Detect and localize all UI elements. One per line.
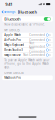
staticText: Connected	[29, 38, 45, 42]
button[interactable]: Magic Keyboard	[2, 43, 53, 48]
staticText: To pair an Apple Watch with your iPhone,…	[4, 58, 49, 69]
staticText: Now discoverable as “iPhone”.	[4, 23, 45, 26]
staticText: MY DEVICES	[4, 28, 19, 32]
staticText: Settings	[4, 10, 15, 14]
staticText: AirPods Pro	[4, 38, 21, 42]
staticText: 9:41	[5, 1, 12, 7]
staticText: OTHER DEVICES	[4, 71, 23, 75]
button[interactable]: Beats Studio3	[2, 48, 53, 53]
staticText: Not Connected	[29, 46, 45, 54]
staticText: Bluetooth	[4, 16, 20, 22]
staticText: Bluetooth	[17, 9, 37, 14]
button[interactable]: Apple Watch	[2, 33, 53, 38]
staticText: Magic Mouse	[4, 53, 21, 57]
button[interactable]: Settings	[0, 9, 15, 15]
button[interactable]: AirPods Pro	[2, 38, 53, 43]
staticText: MacBook Pro	[4, 76, 21, 79]
staticText: Connected	[29, 33, 45, 37]
button[interactable]: MacBook Pro	[2, 75, 53, 80]
staticText: Magic Keyboard	[4, 43, 24, 47]
staticText: Apple Watch	[4, 33, 21, 37]
staticText: Not Connected	[29, 41, 45, 49]
staticText: Not Connected	[23, 53, 45, 57]
button[interactable]: Magic Mouse	[2, 53, 53, 57]
staticText: Beats Studio3	[4, 48, 23, 52]
